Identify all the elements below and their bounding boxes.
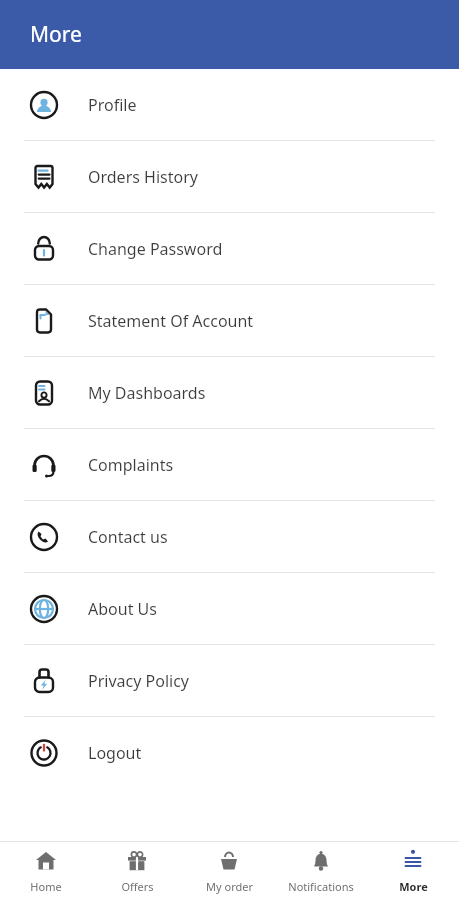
staticText: Statement Of Account [88, 310, 254, 332]
button[interactable]: Offers [91, 842, 183, 900]
button[interactable]: Profile [0, 69, 459, 140]
button[interactable]: Statement Of Account [0, 285, 459, 356]
staticText: More [399, 879, 428, 894]
staticText: Logout [88, 742, 142, 764]
staticText: Home [30, 879, 62, 894]
button[interactable]: My Dashboards [0, 357, 459, 428]
button[interactable]: More [367, 842, 459, 900]
button[interactable]: My order [183, 842, 275, 900]
button[interactable]: About Us [0, 573, 459, 644]
staticText: About Us [88, 598, 157, 620]
staticText: More [30, 20, 82, 49]
button[interactable]: Privacy Policy [0, 645, 459, 716]
staticText: Complaints [88, 454, 174, 476]
staticText: Contact us [88, 526, 168, 548]
staticText: My order [206, 879, 253, 894]
staticText: Offers [121, 879, 154, 894]
button[interactable]: Orders History [0, 141, 459, 212]
staticText: My Dashboards [88, 382, 206, 404]
staticText: Profile [88, 94, 137, 116]
staticText: Change Password [88, 238, 223, 260]
staticText: Notifications [288, 879, 354, 894]
button[interactable]: Contact us [0, 501, 459, 572]
button[interactable]: Complaints [0, 429, 459, 500]
button[interactable]: Notifications [275, 842, 367, 900]
button[interactable]: Home [0, 842, 91, 900]
button[interactable]: Change Password [0, 213, 459, 284]
staticText: Orders History [88, 166, 198, 188]
staticText: Privacy Policy [88, 670, 189, 692]
button[interactable]: Logout [0, 717, 459, 788]
